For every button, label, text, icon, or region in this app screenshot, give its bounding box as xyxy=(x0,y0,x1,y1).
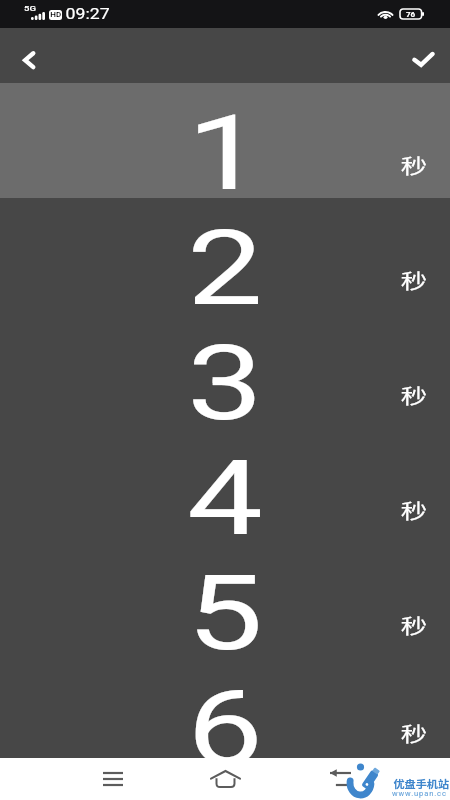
staticText: 优盘手机站 xyxy=(393,776,450,791)
button[interactable]: 4 xyxy=(0,428,450,543)
button[interactable]: 6 xyxy=(0,658,450,758)
button[interactable]: 5 xyxy=(0,543,450,658)
button[interactable]: Back xyxy=(308,758,372,800)
staticText: 秒 xyxy=(401,719,427,748)
staticText: 5 xyxy=(0,553,450,668)
staticText: 秒 xyxy=(401,266,427,295)
staticText: 6 xyxy=(0,668,450,768)
button[interactable]: Recent apps xyxy=(81,758,145,800)
staticText: 秒 xyxy=(401,151,427,180)
staticText: www.upan.cc xyxy=(392,789,447,798)
button[interactable]: Confirm xyxy=(399,32,447,80)
button[interactable]: 3 xyxy=(0,313,450,428)
staticText: 3 xyxy=(0,323,450,438)
staticText: 秒 xyxy=(401,496,427,525)
staticText: 2 xyxy=(0,208,450,323)
staticText: HD xyxy=(50,11,62,19)
button[interactable]: Back xyxy=(4,32,52,80)
staticText: 秒 xyxy=(401,611,427,640)
staticText: 09:27 xyxy=(66,5,110,23)
staticText: 秒 xyxy=(401,381,427,410)
button[interactable]: 1 xyxy=(0,83,450,198)
staticText: 5G xyxy=(24,4,36,13)
staticText: 1 xyxy=(0,93,450,208)
staticText: 76 xyxy=(406,10,416,19)
staticText: 4 xyxy=(0,438,450,553)
button[interactable]: Home xyxy=(193,758,257,800)
button[interactable]: 2 xyxy=(0,198,450,313)
